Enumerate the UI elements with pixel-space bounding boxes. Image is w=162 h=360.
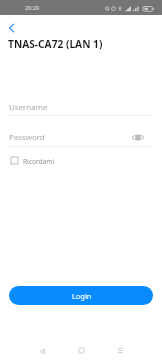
staticText: Ricordami xyxy=(23,157,55,166)
staticText: TNAS-CA72 (LAN 1) xyxy=(8,37,103,51)
button[interactable]: Login xyxy=(9,286,153,305)
staticText: 20:29 xyxy=(25,4,40,12)
staticText: Username xyxy=(9,102,48,113)
button[interactable]: Back xyxy=(2,19,20,37)
button[interactable]: Recents xyxy=(110,340,130,360)
staticText: Password xyxy=(9,132,45,143)
staticText: Login xyxy=(72,291,92,301)
button[interactable]: Back xyxy=(32,341,52,360)
button[interactable]: Home xyxy=(71,340,91,360)
button[interactable]: Ricordami xyxy=(4,151,55,169)
button[interactable]: Show password xyxy=(130,129,146,145)
